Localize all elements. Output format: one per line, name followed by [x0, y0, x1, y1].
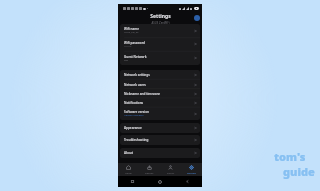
staticText: tom's: [274, 149, 306, 164]
staticText: Troubleshooting: [124, 138, 149, 142]
staticText: ••••••••: [124, 44, 132, 47]
button[interactable]: Network users: [120, 80, 200, 89]
staticText: ASUS_5G_2C: [124, 30, 139, 33]
button[interactable]: Home: [158, 180, 162, 184]
button[interactable]: Family: [160, 163, 181, 176]
staticText: Network users: [124, 83, 146, 87]
staticText: Home: [125, 171, 132, 174]
button[interactable]: Wifi password: [120, 37, 200, 51]
button[interactable]: Recents: [131, 180, 134, 183]
button[interactable]: Appearance: [120, 123, 200, 133]
staticText: About: [124, 151, 134, 155]
staticText: Wifi password: [124, 41, 145, 45]
button[interactable]: Devices: [139, 163, 160, 176]
staticText: Appearance: [124, 126, 142, 130]
button[interactable]: Notifications: [120, 98, 200, 107]
button[interactable]: Nickname and timezone: [120, 89, 200, 98]
staticText: Nickname and timezone: [124, 92, 161, 96]
button[interactable]: Network settings: [120, 70, 200, 80]
button[interactable]: Back: [186, 180, 189, 183]
staticText: Devices: [145, 171, 154, 174]
button[interactable]: Wifi name: [120, 24, 200, 37]
staticText: Network settings: [124, 73, 150, 77]
staticText: guide: [283, 164, 315, 179]
button[interactable]: Settings: [181, 163, 202, 176]
staticText: Off: [124, 58, 128, 61]
staticText: Family: [167, 171, 175, 174]
button[interactable]: About: [120, 148, 200, 158]
button[interactable]: Troubleshooting: [120, 135, 200, 145]
button[interactable]: Guest Network: [120, 51, 200, 65]
staticText: Wifi name: [124, 27, 139, 31]
staticText: Settings: [150, 13, 171, 20]
staticText: Settings: [187, 171, 196, 174]
button[interactable]: Account: [194, 15, 200, 21]
staticText: ASUS ZenWiFi: [151, 21, 170, 24]
button[interactable]: Software version: [120, 107, 200, 120]
staticText: Notifications: [124, 101, 144, 105]
staticText: Update available: [124, 113, 144, 116]
staticText: Software version: [124, 110, 150, 114]
button[interactable]: Home: [118, 163, 139, 176]
staticText: Guest Network: [124, 55, 147, 59]
